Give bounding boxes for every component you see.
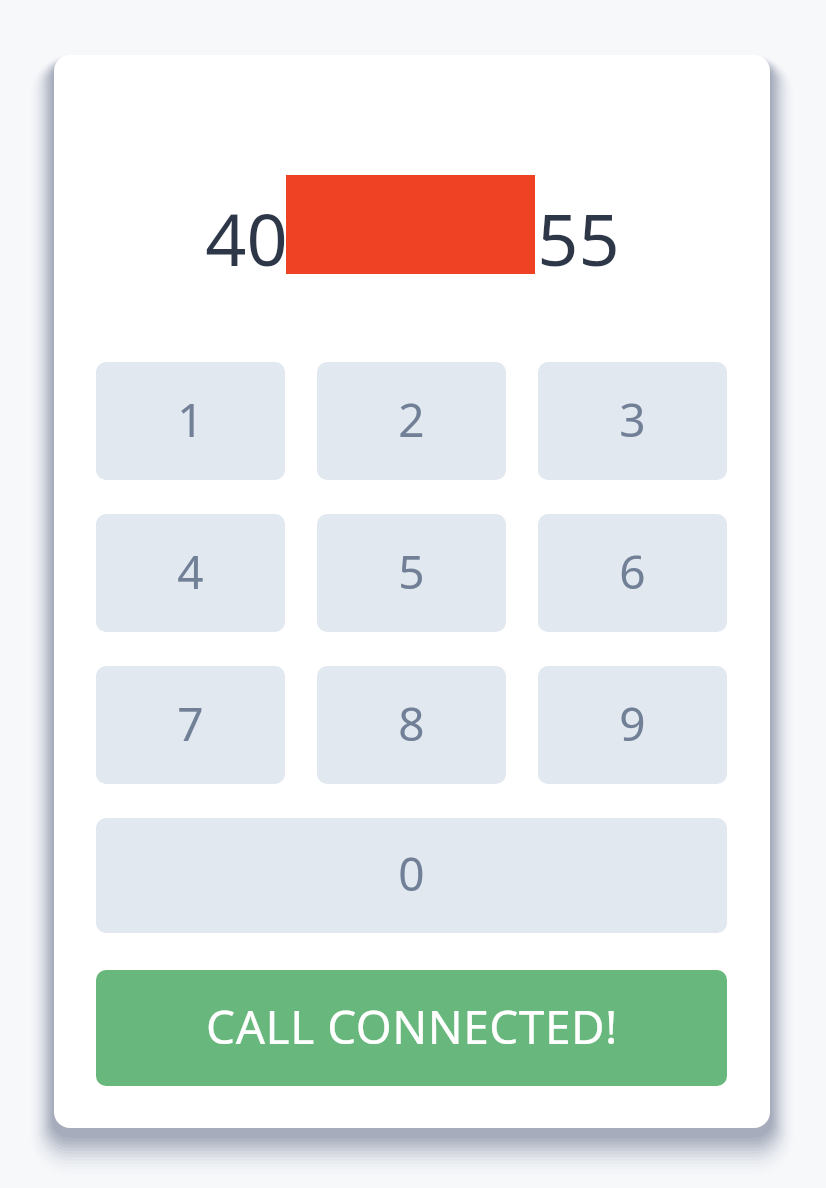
- button[interactable]: 4: [96, 514, 285, 632]
- button[interactable]: 0: [96, 818, 727, 933]
- staticText: 2: [398, 388, 425, 451]
- staticText: CALL CONNECTED!: [206, 995, 618, 1058]
- staticText: 1: [177, 388, 204, 451]
- button[interactable]: 8: [317, 666, 506, 784]
- staticText: 40: [205, 189, 288, 271]
- staticText: 5: [398, 540, 425, 603]
- staticText: 55: [537, 189, 620, 271]
- button[interactable]: CALL CONNECTED!: [96, 970, 727, 1086]
- button[interactable]: 1: [96, 362, 285, 480]
- button[interactable]: 5: [317, 514, 506, 632]
- staticText: 0: [398, 842, 425, 905]
- button[interactable]: 6: [538, 514, 727, 632]
- button[interactable]: 7: [96, 666, 285, 784]
- staticText: 4: [177, 540, 204, 603]
- staticText: 3: [619, 388, 646, 451]
- button[interactable]: 9: [538, 666, 727, 784]
- button[interactable]: 3: [538, 362, 727, 480]
- staticText: 7: [177, 692, 204, 755]
- button[interactable]: 2: [317, 362, 506, 480]
- staticText: 6: [619, 540, 646, 603]
- staticText: 8: [398, 692, 425, 755]
- staticText: 9: [619, 692, 646, 755]
